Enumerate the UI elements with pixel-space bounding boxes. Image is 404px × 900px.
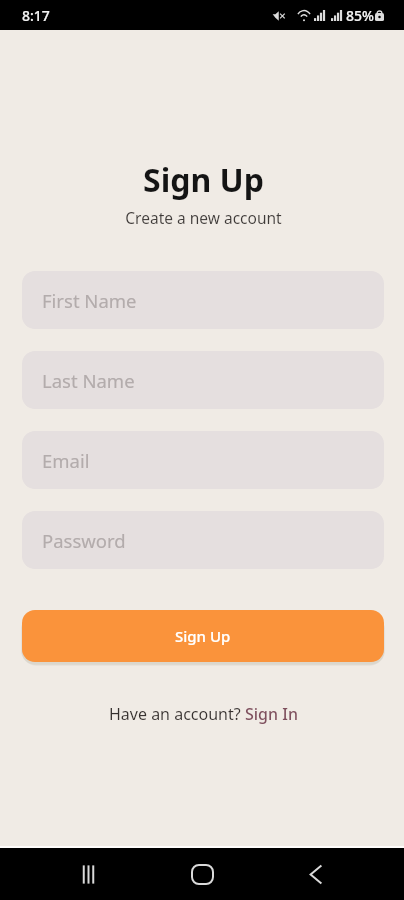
staticText: Sign Up <box>175 626 231 646</box>
button[interactable]: Recent apps <box>62 848 114 900</box>
staticText: 8:17 <box>22 6 50 25</box>
button[interactable]: Back <box>290 848 342 900</box>
button[interactable]: First Name <box>22 271 384 329</box>
staticText: Sign In <box>245 703 298 725</box>
staticText: Password <box>42 528 126 553</box>
staticText: Email <box>42 448 90 473</box>
button[interactable]: Sign In <box>245 703 298 725</box>
staticText: Have an account? <box>109 703 245 725</box>
staticText: First Name <box>42 288 137 313</box>
staticText: 85% <box>346 6 374 25</box>
staticText: Create a new account <box>3 207 404 228</box>
button[interactable]: Last Name <box>22 351 384 409</box>
staticText: Last Name <box>42 368 135 393</box>
button[interactable]: Password <box>22 511 384 569</box>
button[interactable]: Email <box>22 431 384 489</box>
staticText: Sign Up <box>3 158 404 202</box>
button[interactable]: Home <box>176 848 228 900</box>
button[interactable]: Sign Up <box>22 610 384 662</box>
